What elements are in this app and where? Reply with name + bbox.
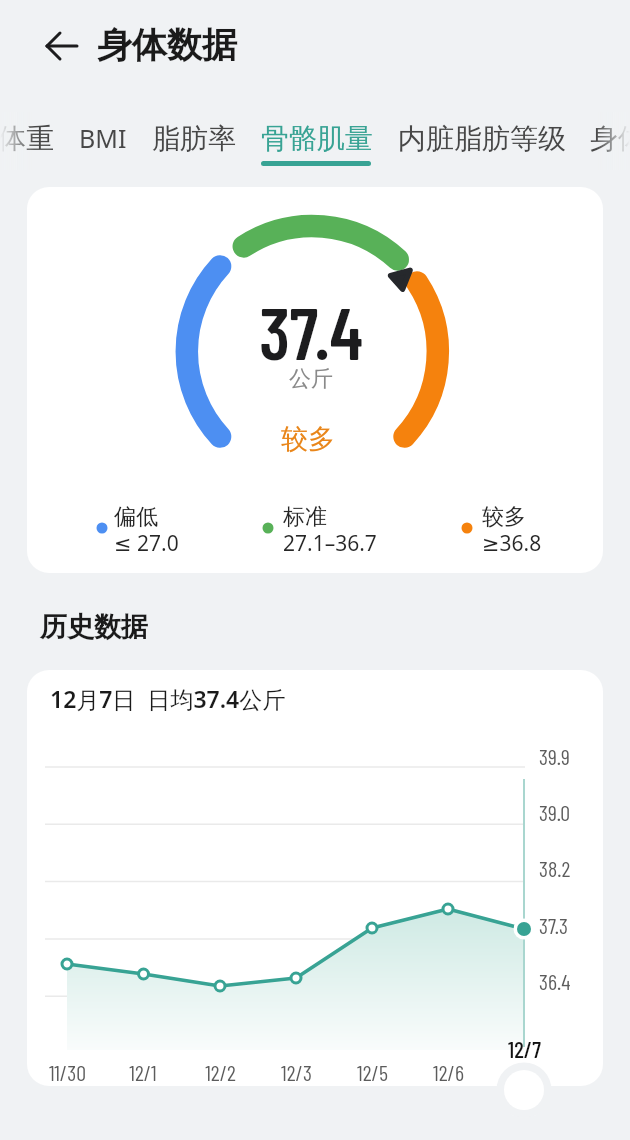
staticText: 12/7	[508, 1035, 541, 1063]
staticText: 12月7日 日均37.4公斤	[50, 683, 286, 714]
staticText: 脂肪率	[152, 121, 236, 156]
staticText: BMI	[79, 121, 127, 155]
button[interactable]	[504, 1070, 544, 1110]
staticText: 标准	[283, 503, 327, 531]
staticText: 身体成分	[590, 121, 630, 156]
staticText: ≥36.8	[482, 529, 542, 558]
staticText: 27.1–36.7	[283, 529, 377, 558]
button[interactable]: 骨骼肌量	[261, 108, 373, 168]
staticText: 37.3	[539, 912, 568, 938]
staticText: 12/2	[205, 1059, 236, 1085]
staticText: 39.9	[539, 743, 570, 769]
button[interactable]: 体重	[0, 108, 54, 168]
button[interactable]: 脂肪率	[152, 108, 236, 168]
staticText: 较多	[482, 503, 526, 531]
staticText: 内脏脂肪等级	[398, 121, 566, 156]
staticText: 12/6	[433, 1059, 464, 1085]
staticText: 历史数据	[40, 610, 148, 644]
staticText: 公斤	[289, 365, 333, 393]
button[interactable]: BMI	[79, 108, 127, 168]
staticText: 较多	[281, 422, 335, 456]
staticText: 12/1	[129, 1059, 157, 1085]
staticText: 偏低	[114, 503, 158, 531]
button[interactable]: 身体成分	[590, 108, 630, 168]
staticText: 11/30	[49, 1059, 86, 1085]
staticText: 身体数据	[97, 23, 237, 67]
staticText: 12/5	[357, 1059, 388, 1085]
button[interactable]: 内脏脂肪等级	[398, 108, 566, 168]
staticText: 37.4	[259, 288, 363, 368]
staticText: 12/3	[281, 1059, 312, 1085]
staticText: 38.2	[539, 855, 571, 881]
button[interactable]	[35, 22, 87, 70]
staticText: 39.0	[539, 799, 571, 825]
staticText: 36.4	[539, 968, 571, 994]
staticText: 骨骼肌量	[261, 121, 373, 156]
staticText: ≤ 27.0	[114, 529, 179, 558]
staticText: 体重	[0, 121, 54, 156]
